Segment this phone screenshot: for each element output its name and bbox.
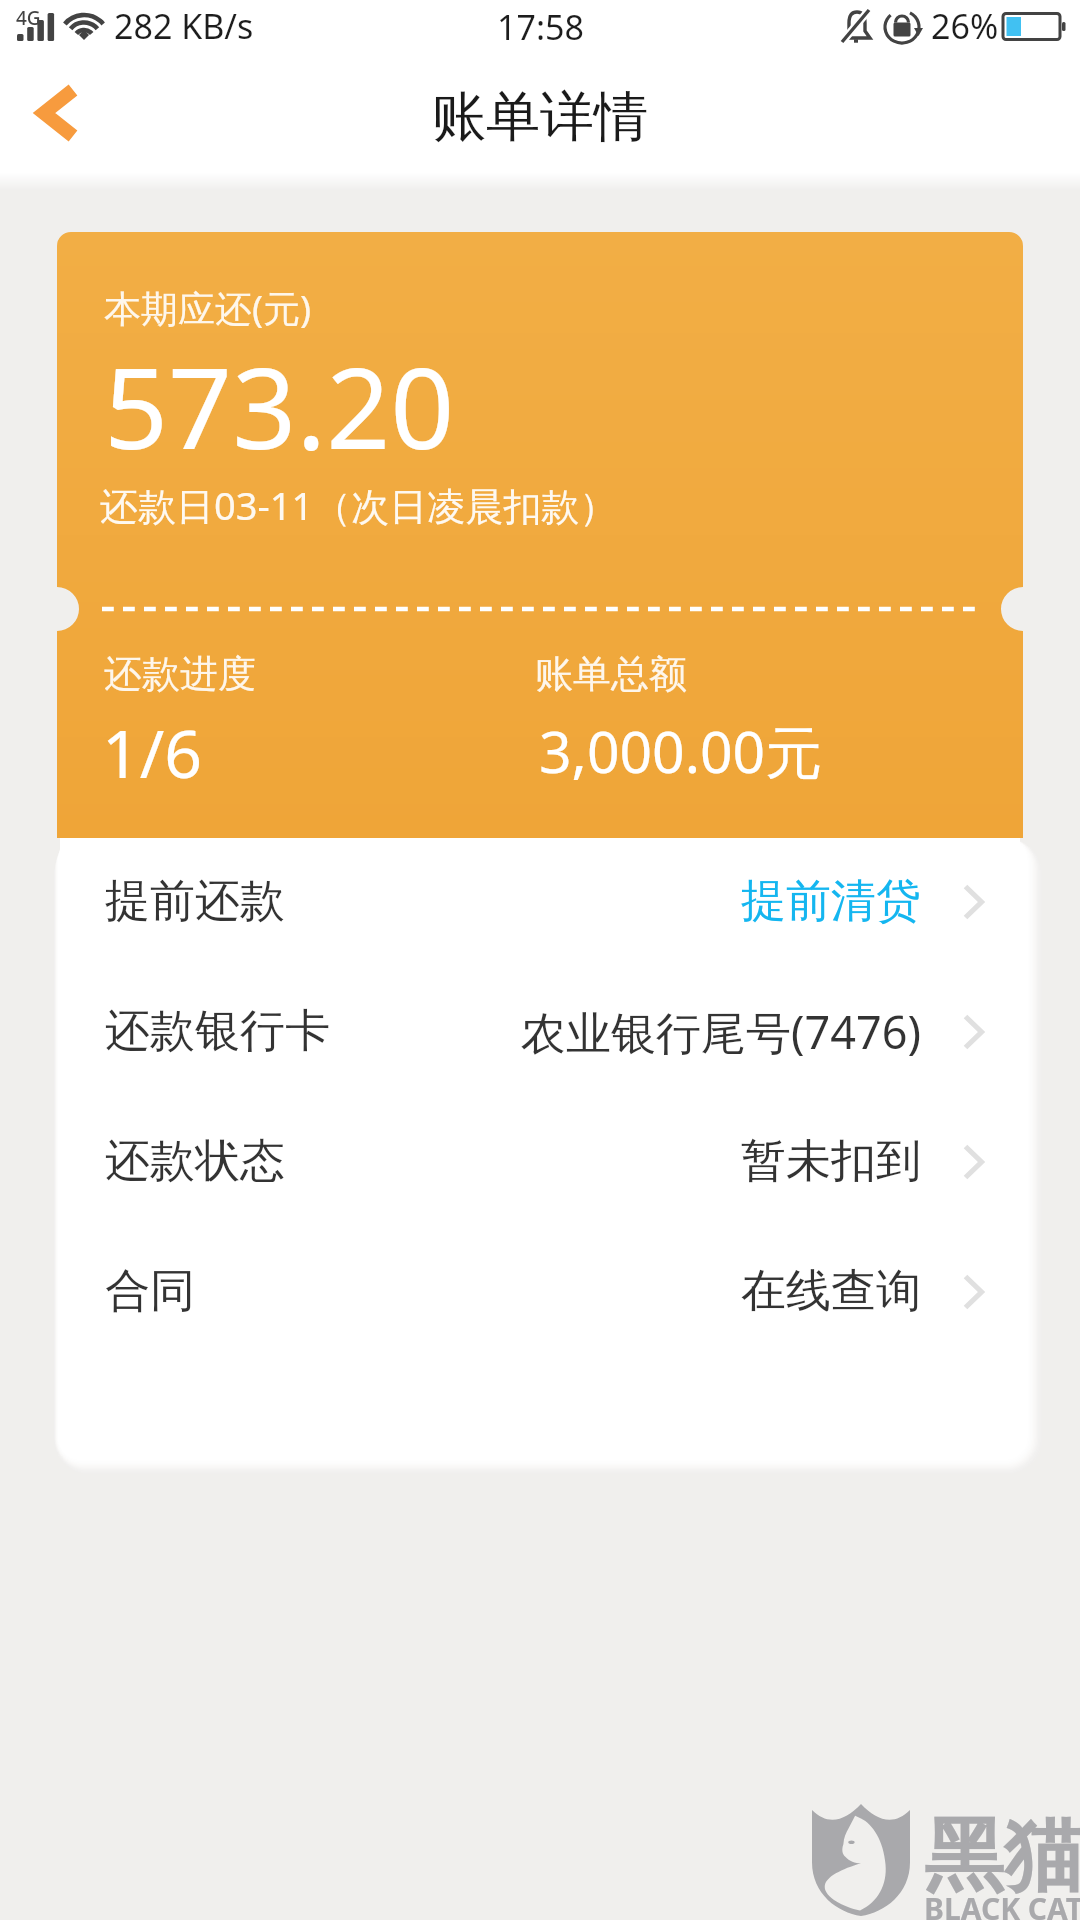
- staticText: 黑猫: [924, 1806, 1080, 1907]
- button[interactable]: 合同: [57, 1226, 1023, 1356]
- staticText: 573.20: [104, 329, 455, 482]
- staticText: 4G: [16, 5, 41, 31]
- staticText: 账单详情: [432, 83, 648, 151]
- staticText: 1/6: [102, 707, 203, 797]
- staticText: 还款状态: [105, 1133, 285, 1190]
- staticText: 还款日03-11（次日凌晨扣款）: [100, 479, 618, 531]
- staticText: 26%: [931, 3, 999, 49]
- staticText: 在线查询: [741, 1263, 921, 1320]
- staticText: 本期应还(元): [104, 282, 312, 333]
- staticText: 暂未扣到: [741, 1133, 921, 1190]
- staticText: 合同: [105, 1263, 195, 1320]
- staticText: BLACK CAT: [924, 1888, 1080, 1920]
- button[interactable]: Back: [0, 63, 108, 171]
- staticText: 17:58: [497, 4, 584, 50]
- staticText: 还款银行卡: [105, 1003, 330, 1060]
- staticText: 提前清贷: [741, 873, 921, 930]
- button[interactable]: 提前还款: [57, 836, 1023, 966]
- staticText: 282 KB/s: [114, 3, 254, 49]
- staticText: 账单总额: [535, 650, 687, 698]
- button[interactable]: 还款银行卡: [57, 966, 1023, 1096]
- staticText: 3,000.00元: [539, 712, 823, 790]
- staticText: 还款进度: [104, 650, 256, 698]
- button[interactable]: 还款状态: [57, 1096, 1023, 1226]
- staticText: 提前还款: [105, 873, 285, 930]
- staticText: 农业银行尾号(7476): [521, 1001, 921, 1062]
